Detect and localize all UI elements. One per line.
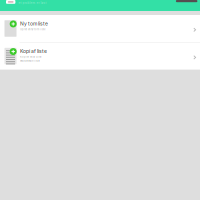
button[interactable]: Ny tom liste bbox=[0, 15, 200, 42]
staticText: Ny tom liste bbox=[20, 21, 48, 27]
staticText: Kopier en af dine bbox=[20, 55, 41, 58]
staticText: Opret en ny tom liste bbox=[20, 28, 45, 31]
staticText: Kopi af liste bbox=[20, 48, 47, 54]
staticText: et problem er løst bbox=[18, 1, 46, 5]
staticText: eksisterende lister bbox=[20, 59, 40, 62]
button[interactable]: Kopi af liste bbox=[0, 43, 200, 70]
